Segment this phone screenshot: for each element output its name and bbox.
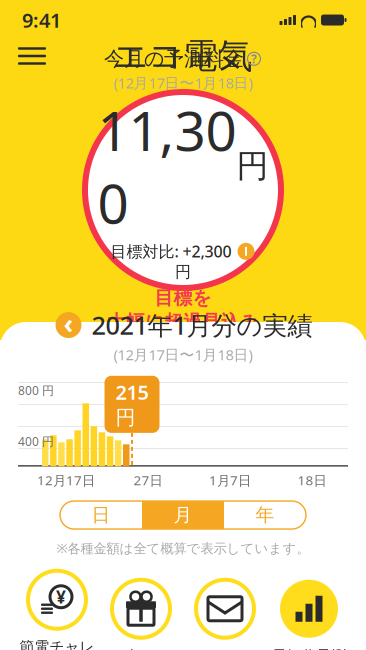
button[interactable]: メッセージ [183,578,267,650]
button[interactable]: 日 [60,501,142,529]
staticText: 800 円 [18,382,54,398]
staticText: 2021年1月分の実績 [91,308,312,342]
staticText: 節電チャレンジ [19,638,94,650]
staticText: ギフト [118,647,163,650]
button[interactable]: Menu [10,36,54,76]
staticText: 215 円 [115,379,148,430]
button[interactable]: 電気代予測 [267,578,351,650]
staticText: 大幅に超過見込み [107,311,259,333]
staticText: 400 円 [18,433,54,449]
button[interactable]: Previous month [53,310,83,340]
button[interactable]: Help [246,51,262,67]
staticText: 目標対比: +2,300 [110,241,231,262]
button[interactable]: ギフト [99,578,183,650]
staticText: ※各種金額は全て概算で表示しています。 [56,539,309,557]
staticText: 18日 [297,471,326,489]
staticText: 11,300 [97,93,236,239]
staticText: 1月7日 [209,471,251,489]
staticText: (12月17日〜1月18日) [113,345,252,364]
staticText: エコ電気 [113,35,253,77]
staticText: ‹ [63,305,73,341]
staticText: 円 [175,262,191,282]
staticText: 日 [91,504,110,526]
staticText: 年 [255,504,274,526]
button[interactable]: 年 [224,501,306,529]
staticText: (12月17日〜1月18日) [113,73,252,93]
staticText: ¥ [56,585,66,608]
staticText: 12月17日 [37,471,95,489]
button[interactable]: 月 [142,501,224,529]
staticText: 27日 [133,471,162,489]
staticText: 円 [236,146,268,186]
staticText: 今月の予測料金 [104,46,244,71]
button[interactable]: ¥ [15,569,99,650]
staticText: ? [251,51,257,67]
button[interactable]: Edit target [236,242,255,261]
staticText: 9:41 [22,7,61,33]
staticText: 月 [173,504,192,526]
staticText: 目標を [154,287,211,309]
staticText: 電気代予測 [271,647,346,650]
